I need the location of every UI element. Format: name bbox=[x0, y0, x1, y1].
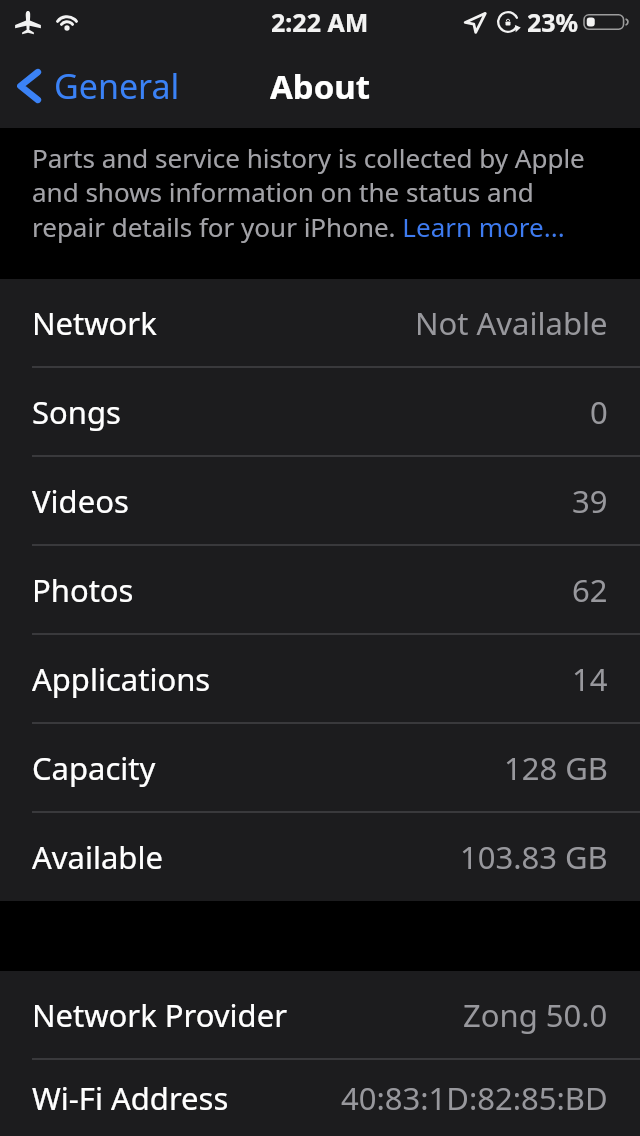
staticText: 2:22 AM bbox=[271, 5, 369, 39]
staticText: Wi-Fi Address bbox=[32, 1077, 229, 1119]
button[interactable]: Videos bbox=[0, 457, 640, 544]
other: Rotation lock bbox=[496, 10, 520, 34]
staticText: Not Available bbox=[415, 302, 608, 344]
button[interactable]: Photos bbox=[0, 546, 640, 633]
staticText: Applications bbox=[32, 658, 211, 700]
staticText: 40:83:1D:82:85:BD bbox=[341, 1077, 608, 1119]
staticText: 62 bbox=[572, 569, 608, 611]
other: Wi-Fi bbox=[51, 10, 83, 34]
staticText: Parts and service history is collected b… bbox=[32, 140, 612, 245]
other: Battery 23 percent bbox=[584, 10, 630, 34]
other: Airplane mode bbox=[14, 9, 42, 35]
staticText: 14 bbox=[572, 658, 608, 700]
staticText: 39 bbox=[572, 480, 608, 522]
button[interactable]: General bbox=[0, 53, 194, 119]
other: Location bbox=[463, 10, 487, 34]
staticText: 128 GB bbox=[504, 747, 608, 789]
button[interactable]: Applications bbox=[0, 635, 640, 722]
staticText: About bbox=[270, 64, 371, 109]
button[interactable]: Capacity bbox=[0, 724, 640, 811]
button[interactable]: Network bbox=[0, 279, 640, 366]
staticText: Network Provider bbox=[32, 994, 287, 1036]
staticText: Available bbox=[32, 836, 163, 878]
button[interactable]: Songs bbox=[0, 368, 640, 455]
staticText: 23% bbox=[527, 5, 579, 39]
staticText: Photos bbox=[32, 569, 134, 611]
staticText: 103.83 GB bbox=[460, 836, 608, 878]
staticText: Videos bbox=[32, 480, 129, 522]
button[interactable]: Available bbox=[0, 813, 640, 901]
staticText: Network bbox=[32, 302, 157, 344]
staticText: Zong 50.0 bbox=[463, 994, 608, 1036]
staticText: 0 bbox=[590, 391, 608, 433]
staticText: Songs bbox=[32, 391, 121, 433]
staticText: Capacity bbox=[32, 747, 156, 789]
staticText: General bbox=[54, 63, 180, 109]
button[interactable]: Network Provider bbox=[0, 971, 640, 1058]
button[interactable]: Wi-Fi Address bbox=[0, 1060, 640, 1136]
